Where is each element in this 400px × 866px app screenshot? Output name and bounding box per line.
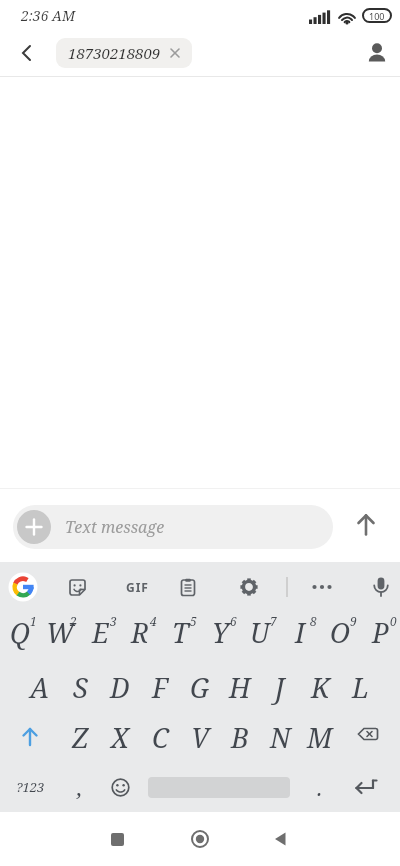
button[interactable]: T (160, 612, 200, 662)
button[interactable] (100, 762, 140, 812)
button[interactable]: Y (200, 612, 240, 662)
staticText: 7 (270, 613, 277, 629)
button[interactable]: X (100, 712, 140, 762)
staticText: 1 (30, 613, 37, 629)
staticText: 0 (390, 613, 397, 629)
button[interactable] (57, 562, 97, 612)
staticText: 18730218809 (68, 43, 161, 63)
staticText: 8 (310, 613, 317, 629)
staticText: 6 (230, 613, 237, 629)
button[interactable] (176, 815, 224, 863)
button[interactable]: B (220, 712, 260, 762)
button[interactable] (17, 510, 51, 544)
button[interactable] (3, 562, 43, 612)
staticText: R (131, 614, 149, 651)
staticText: . (317, 772, 323, 802)
button[interactable]: L (340, 662, 380, 712)
staticText: D (110, 669, 130, 706)
button[interactable] (340, 762, 400, 812)
staticText: K (311, 669, 330, 706)
button[interactable] (3, 30, 51, 76)
button[interactable]: ?123 (0, 762, 60, 812)
staticText: P (372, 614, 389, 651)
staticText: O (330, 614, 351, 651)
button[interactable]: R (120, 612, 160, 662)
staticText: E (92, 614, 109, 651)
staticText: G (190, 669, 210, 706)
button[interactable]: I (280, 612, 320, 662)
staticText: 4 (150, 613, 157, 629)
staticText: 3 (110, 613, 117, 629)
button[interactable]: G (180, 662, 220, 712)
staticText: X (111, 719, 129, 756)
button[interactable]: . (300, 762, 340, 812)
staticText: C (152, 719, 169, 756)
staticText: 5 (190, 613, 197, 629)
staticText: H (229, 669, 251, 706)
button[interactable]: Q (0, 612, 40, 662)
staticText: GIF (126, 579, 149, 595)
button[interactable]: N (260, 712, 300, 762)
staticText: 2:36 AM (21, 6, 76, 25)
staticText: J (275, 669, 285, 706)
staticText: S (73, 669, 88, 706)
button[interactable]: C (140, 712, 180, 762)
button[interactable]: W (40, 612, 80, 662)
button[interactable]: P (360, 612, 400, 662)
staticText: Q (10, 614, 31, 651)
button[interactable]: V (180, 712, 220, 762)
button[interactable]: H (220, 662, 260, 712)
button[interactable]: GIF (117, 562, 157, 612)
button[interactable]: S (60, 662, 100, 712)
button[interactable] (354, 30, 400, 76)
button[interactable]: K (300, 662, 340, 712)
button[interactable] (340, 712, 400, 762)
staticText: W (46, 614, 75, 651)
staticText: Y (212, 614, 229, 651)
button[interactable] (361, 562, 400, 612)
staticText: U (250, 614, 270, 651)
button[interactable]: O (320, 612, 360, 662)
button[interactable]: J (260, 662, 300, 712)
button[interactable] (229, 562, 269, 612)
button[interactable]: , (60, 762, 100, 812)
staticText: 2 (70, 613, 77, 629)
staticText: I (295, 614, 305, 651)
button[interactable]: D (100, 662, 140, 712)
staticText: Text message (65, 516, 165, 538)
staticText: T (172, 614, 189, 651)
staticText: 100 (369, 10, 385, 22)
button[interactable] (342, 501, 390, 549)
staticText: N (270, 719, 291, 756)
button[interactable]: Text message (13, 505, 333, 549)
button[interactable] (93, 815, 141, 863)
staticText: V (191, 719, 210, 756)
button[interactable] (168, 562, 208, 612)
button[interactable]: 18730218809 (56, 38, 192, 68)
button[interactable] (302, 562, 342, 612)
staticText: B (231, 719, 249, 756)
button[interactable] (256, 815, 304, 863)
staticText: L (352, 669, 369, 706)
button[interactable]: F (140, 662, 180, 712)
staticText: 9 (350, 613, 357, 629)
staticText: , (77, 772, 83, 802)
button[interactable]: M (300, 712, 340, 762)
staticText: A (30, 669, 50, 706)
button[interactable]: A (20, 662, 60, 712)
staticText: ?123 (16, 778, 45, 796)
staticText: F (152, 669, 168, 706)
button[interactable]: E (80, 612, 120, 662)
button[interactable] (140, 762, 300, 812)
button[interactable]: U (240, 612, 280, 662)
staticText: M (307, 719, 333, 756)
button[interactable] (0, 712, 60, 762)
button[interactable]: Z (60, 712, 100, 762)
staticText: Z (72, 719, 89, 756)
